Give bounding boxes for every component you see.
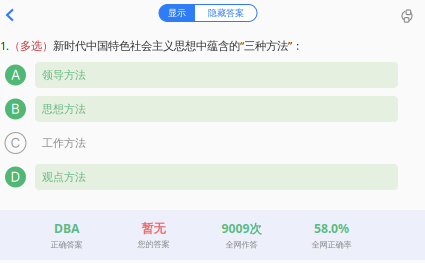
staticText: 观点方法 xyxy=(42,170,86,184)
staticText: 全网正确率 xyxy=(311,240,351,250)
button[interactable]: D xyxy=(0,160,425,194)
staticText: 隐藏答案 xyxy=(208,7,244,19)
staticText: 工作方法 xyxy=(42,136,86,150)
staticText: 正确答案 xyxy=(50,240,82,250)
button[interactable]: 隐藏答案 xyxy=(195,4,257,21)
staticText: 1.（多选）新时代中国特色社会主义思想中蕴含的“三种方法”： xyxy=(0,38,303,53)
staticText: 显示 xyxy=(168,7,186,19)
staticText: 9009次 xyxy=(221,220,261,237)
button[interactable]: B xyxy=(0,92,425,126)
staticText: C xyxy=(10,135,20,151)
staticText: 思想方法 xyxy=(42,102,86,116)
staticText: A xyxy=(11,67,20,83)
button[interactable]: C xyxy=(0,126,425,160)
staticText: B xyxy=(11,101,20,117)
staticText: DBA xyxy=(54,220,79,237)
staticText: 暂无 xyxy=(141,221,165,236)
button[interactable]: Back xyxy=(0,0,20,26)
staticText: 58.0% xyxy=(314,220,349,237)
button[interactable]: 显示 xyxy=(159,4,195,21)
staticText: D xyxy=(10,169,20,185)
staticText: 领导方法 xyxy=(42,68,86,82)
staticText: 全网作答 xyxy=(225,240,257,250)
button[interactable]: A xyxy=(0,58,425,92)
staticText: 您的答案 xyxy=(137,239,169,249)
button[interactable]: Shuffle questions xyxy=(396,0,418,26)
